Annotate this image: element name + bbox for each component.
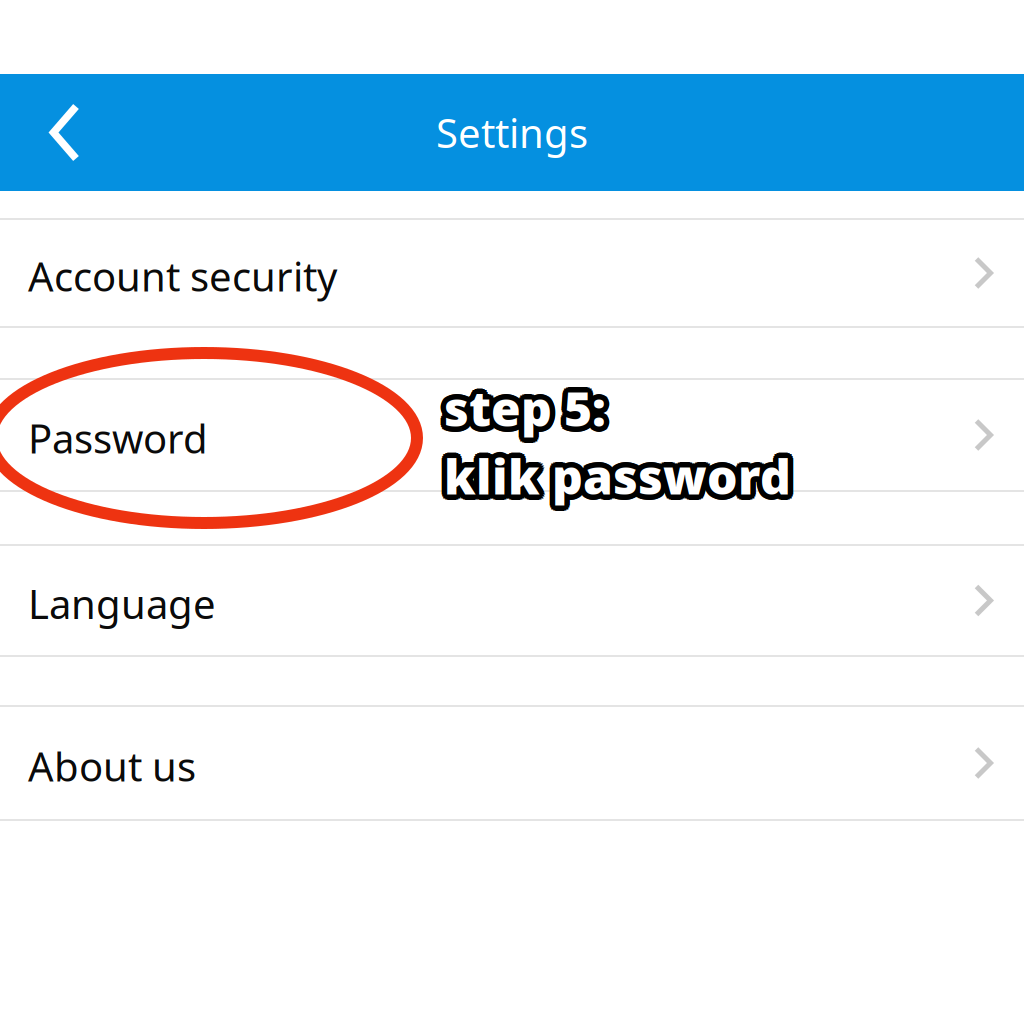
- button[interactable]: Account security: [0, 220, 1024, 326]
- staticText: Language: [28, 577, 216, 630]
- staticText: klik password: [444, 444, 791, 508]
- button[interactable]: Password: [0, 380, 1024, 490]
- button[interactable]: About us: [0, 707, 1024, 819]
- staticText: step 5:: [444, 376, 606, 440]
- button[interactable]: Back: [0, 74, 80, 191]
- staticText: Account security: [28, 249, 337, 302]
- button[interactable]: Language: [0, 546, 1024, 655]
- staticText: About us: [28, 739, 196, 792]
- staticText: Settings: [436, 106, 588, 159]
- staticText: Password: [28, 411, 208, 464]
